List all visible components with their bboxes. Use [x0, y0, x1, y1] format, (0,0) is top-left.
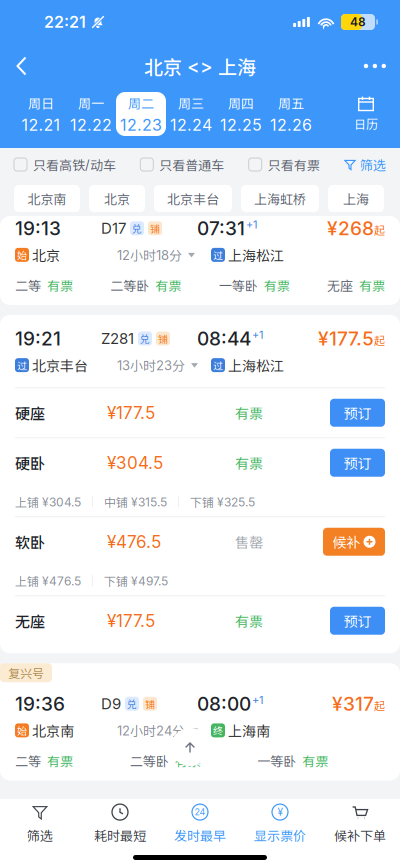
staticText: 19:21 [15, 327, 61, 350]
button[interactable]: 周日 [16, 92, 66, 136]
staticText: 12.26 [270, 115, 312, 135]
staticText: 有票 [47, 276, 73, 294]
button[interactable]: More options [344, 48, 386, 84]
staticText: 二等卧 [130, 751, 169, 770]
staticText: 硬座 [15, 402, 45, 424]
staticText: 过 [17, 358, 27, 372]
staticText: 12.21 [21, 115, 60, 135]
staticText: 北京丰台 [167, 189, 219, 208]
button[interactable]: 北京丰台 [154, 185, 232, 212]
staticText: ¥304.5 [107, 452, 163, 473]
staticText: 周日 [28, 93, 54, 112]
staticText: 有票 [175, 751, 201, 770]
button[interactable]: 筛选 [0, 801, 80, 847]
staticText: 周四 [228, 93, 254, 112]
staticText: 预订 [343, 453, 371, 473]
staticText: 19:13 [15, 217, 61, 240]
staticText: 只看有票 [268, 155, 320, 174]
staticText: +1 [252, 693, 263, 707]
staticText: 有票 [264, 276, 290, 294]
button[interactable]: 周二 [116, 92, 166, 136]
button[interactable]: 候补下单 [320, 801, 400, 847]
button[interactable]: 预订 [330, 607, 385, 635]
staticText: 一等卧 [219, 276, 258, 294]
staticText: 耗时最短 [94, 826, 146, 844]
staticText: 候补下单 [334, 826, 386, 844]
staticText: 北京 <> 上海 [144, 52, 256, 80]
button[interactable]: ¥ [240, 801, 320, 847]
staticText: 兑 [127, 696, 137, 711]
staticText: 有票 [302, 751, 328, 770]
staticText: 周二 [128, 93, 154, 112]
staticText: 起 [374, 697, 385, 713]
staticText: 北京 [32, 245, 60, 265]
button[interactable]: 北京南 [14, 185, 80, 212]
button[interactable]: 周一 [66, 92, 116, 136]
button[interactable]: 预订 [330, 399, 385, 427]
staticText: 始 [17, 248, 27, 262]
button[interactable]: 上海虹桥 [241, 185, 319, 212]
staticText: 日历 [354, 115, 378, 132]
staticText: 铺 [150, 221, 160, 235]
staticText: 无座 [327, 276, 353, 294]
button[interactable]: 24 [160, 801, 240, 847]
button[interactable]: 周四 [216, 92, 266, 136]
button[interactable]: 只看普通车 [140, 149, 224, 179]
button[interactable]: 周三 [166, 92, 216, 136]
button[interactable]: 预订 [330, 449, 385, 477]
staticText: 候补 [332, 532, 360, 552]
staticText: 08:00 [197, 692, 251, 715]
staticText: 12.23 [120, 115, 162, 135]
staticText: 北京南 [32, 720, 74, 741]
staticText: 筛选 [27, 826, 53, 844]
staticText: 上铺 ¥476.5 [15, 572, 81, 589]
staticText: 无座 [15, 610, 45, 632]
staticText: 13小时23分 [117, 356, 185, 374]
button[interactable]: Back [14, 48, 56, 84]
staticText: 中铺 ¥315.5 [104, 493, 167, 510]
staticText: ¥317 [332, 692, 374, 715]
staticText: D9 [101, 695, 121, 713]
staticText: ¥177.5 [318, 327, 374, 350]
staticText: 一等卧 [257, 751, 296, 770]
staticText: 筛选 [360, 155, 386, 174]
staticText: 铺 [145, 696, 155, 711]
staticText: ¥476.5 [107, 531, 161, 552]
staticText: 起 [374, 222, 385, 238]
staticText: 08:44 [197, 327, 251, 350]
staticText: 上海松江 [228, 355, 284, 375]
staticText: 北京 [104, 189, 130, 208]
staticText: 硬卧 [15, 452, 45, 474]
button[interactable]: 北京 [89, 185, 145, 212]
button[interactable]: 上海 [328, 185, 384, 212]
staticText: 上海南 [228, 720, 270, 741]
button[interactable]: 日历 [346, 92, 386, 136]
staticText: 复兴号 [8, 664, 44, 681]
staticText: 上海虹桥 [254, 189, 306, 208]
button[interactable]: 耗时最短 [80, 801, 160, 847]
staticText: 有票 [235, 611, 263, 631]
staticText: 12小时18分 [117, 245, 182, 264]
staticText: 22:21 [44, 12, 86, 32]
staticText: ¥ [277, 806, 282, 818]
staticText: 19:36 [15, 692, 65, 715]
button[interactable]: Back to top [171, 728, 209, 766]
staticText: 兑 [140, 331, 150, 346]
button[interactable]: 只看有票 [249, 149, 320, 179]
staticText: 二等卧 [110, 276, 149, 294]
staticText: 过 [213, 358, 223, 372]
staticText: 只看普通车 [159, 155, 224, 174]
staticText: 兑 [132, 221, 142, 235]
button[interactable]: 只看高铁/动车 [14, 149, 116, 179]
staticText: 上海松江 [228, 245, 284, 265]
staticText: 上海 [343, 189, 369, 208]
button[interactable]: 候补 [323, 528, 385, 556]
staticText: 周三 [178, 93, 204, 112]
button[interactable]: 筛选 [344, 149, 386, 179]
staticText: 周五 [278, 93, 304, 112]
staticText: 发时最早 [174, 826, 226, 844]
staticText: 07:31 [197, 217, 245, 240]
staticText: 48 [350, 15, 366, 29]
button[interactable]: 周五 [266, 92, 316, 136]
staticText: 二等 [15, 276, 41, 294]
